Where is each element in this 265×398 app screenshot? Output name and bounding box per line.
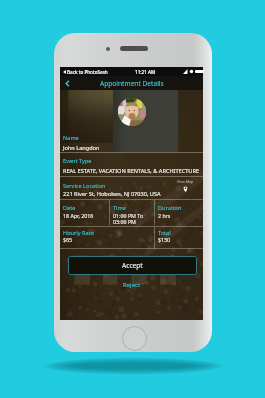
staticText: 18 Apr, 2016 [63, 212, 94, 219]
button[interactable]: Service Location [63, 182, 106, 190]
staticText: $65 [63, 236, 73, 243]
button[interactable]: Hourly Rate [63, 229, 94, 237]
button[interactable]: Reject [113, 279, 151, 291]
button[interactable]: Event Type [63, 157, 92, 165]
button[interactable]: Date [63, 204, 76, 212]
button[interactable]: Total [158, 229, 171, 237]
staticText: $130 [158, 236, 171, 243]
button[interactable]: View Map [170, 179, 200, 192]
button[interactable]: Accept [68, 256, 197, 275]
staticText: 03:00 PM [113, 218, 136, 225]
button[interactable]: Name [63, 134, 79, 142]
button[interactable]: Home [122, 326, 147, 351]
staticText: Back to PhotoSesh [67, 69, 108, 75]
button[interactable]: Time [113, 204, 126, 212]
staticText: 11:21 AM [135, 69, 156, 75]
staticText: View Map [177, 179, 194, 184]
staticText: REAL ESTATE, VACATION RENTALS, & ARCHITE… [63, 167, 200, 175]
button[interactable]: Duration [158, 204, 182, 212]
staticText: Accept [122, 261, 143, 270]
staticText: 01:00 PM To [113, 212, 144, 219]
staticText: 2 hrs [158, 212, 171, 219]
button[interactable]: Back [62, 78, 73, 89]
staticText: Appointment Details [100, 79, 164, 88]
staticText: 221 River St, Hoboken, NJ 07030, USA [63, 190, 161, 198]
staticText: John Langdon [63, 144, 100, 152]
